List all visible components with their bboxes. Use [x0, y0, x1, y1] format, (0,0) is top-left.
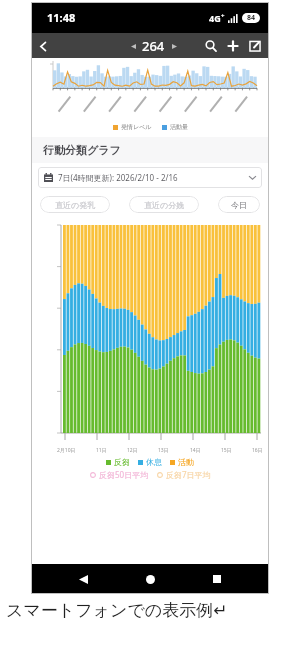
staticText: 7日(4時間更新): 2026/2/10 - 2/16 — [58, 172, 178, 183]
staticText: 2月10日 — [57, 447, 76, 454]
staticText: 反芻7日平均 — [166, 469, 211, 480]
staticText: 発情レベル — [121, 123, 152, 131]
button[interactable]: Search — [200, 35, 222, 57]
button[interactable]: Edit — [244, 35, 266, 57]
staticText: 12日 — [127, 447, 138, 454]
staticText: 264 — [142, 37, 165, 55]
staticText: 活動量 — [170, 123, 188, 131]
staticText: 休息 — [146, 457, 162, 467]
button[interactable]: Next — [168, 40, 180, 52]
staticText: 11日 — [96, 447, 107, 454]
staticText: 直近の分娩 — [144, 200, 185, 210]
staticText: 11:48 — [47, 10, 76, 25]
button[interactable]: Back — [31, 34, 55, 58]
staticText: スマートフォンでの表示例↵ — [6, 600, 228, 621]
staticText: 行動分類グラフ — [43, 143, 121, 157]
staticText: 16日 — [252, 447, 263, 454]
button[interactable]: 今日 — [218, 196, 260, 213]
staticText: 今日 — [231, 200, 247, 210]
staticText: + — [221, 12, 225, 20]
staticText: 84 — [247, 13, 256, 23]
button[interactable]: 7日(4時間更新): 2026/2/10 - 2/16 — [38, 167, 262, 188]
button[interactable]: Home — [135, 564, 165, 594]
staticText: 15日 — [221, 447, 232, 454]
button[interactable]: 直近の発乳 — [40, 196, 110, 213]
staticText: 4G — [209, 12, 221, 24]
staticText: 14日 — [190, 447, 201, 454]
staticText: 活動 — [178, 457, 194, 467]
staticText: 直近の発乳 — [55, 200, 96, 210]
staticText: 13日 — [158, 447, 169, 454]
button[interactable]: 直近の分娩 — [129, 196, 199, 213]
staticText: 反芻 — [114, 457, 130, 467]
staticText: 反芻50日平均 — [99, 469, 149, 480]
button[interactable]: Add — [222, 35, 244, 57]
button[interactable]: Back — [68, 564, 98, 594]
button[interactable]: Previous — [127, 40, 139, 52]
button[interactable]: Recents — [202, 564, 232, 594]
